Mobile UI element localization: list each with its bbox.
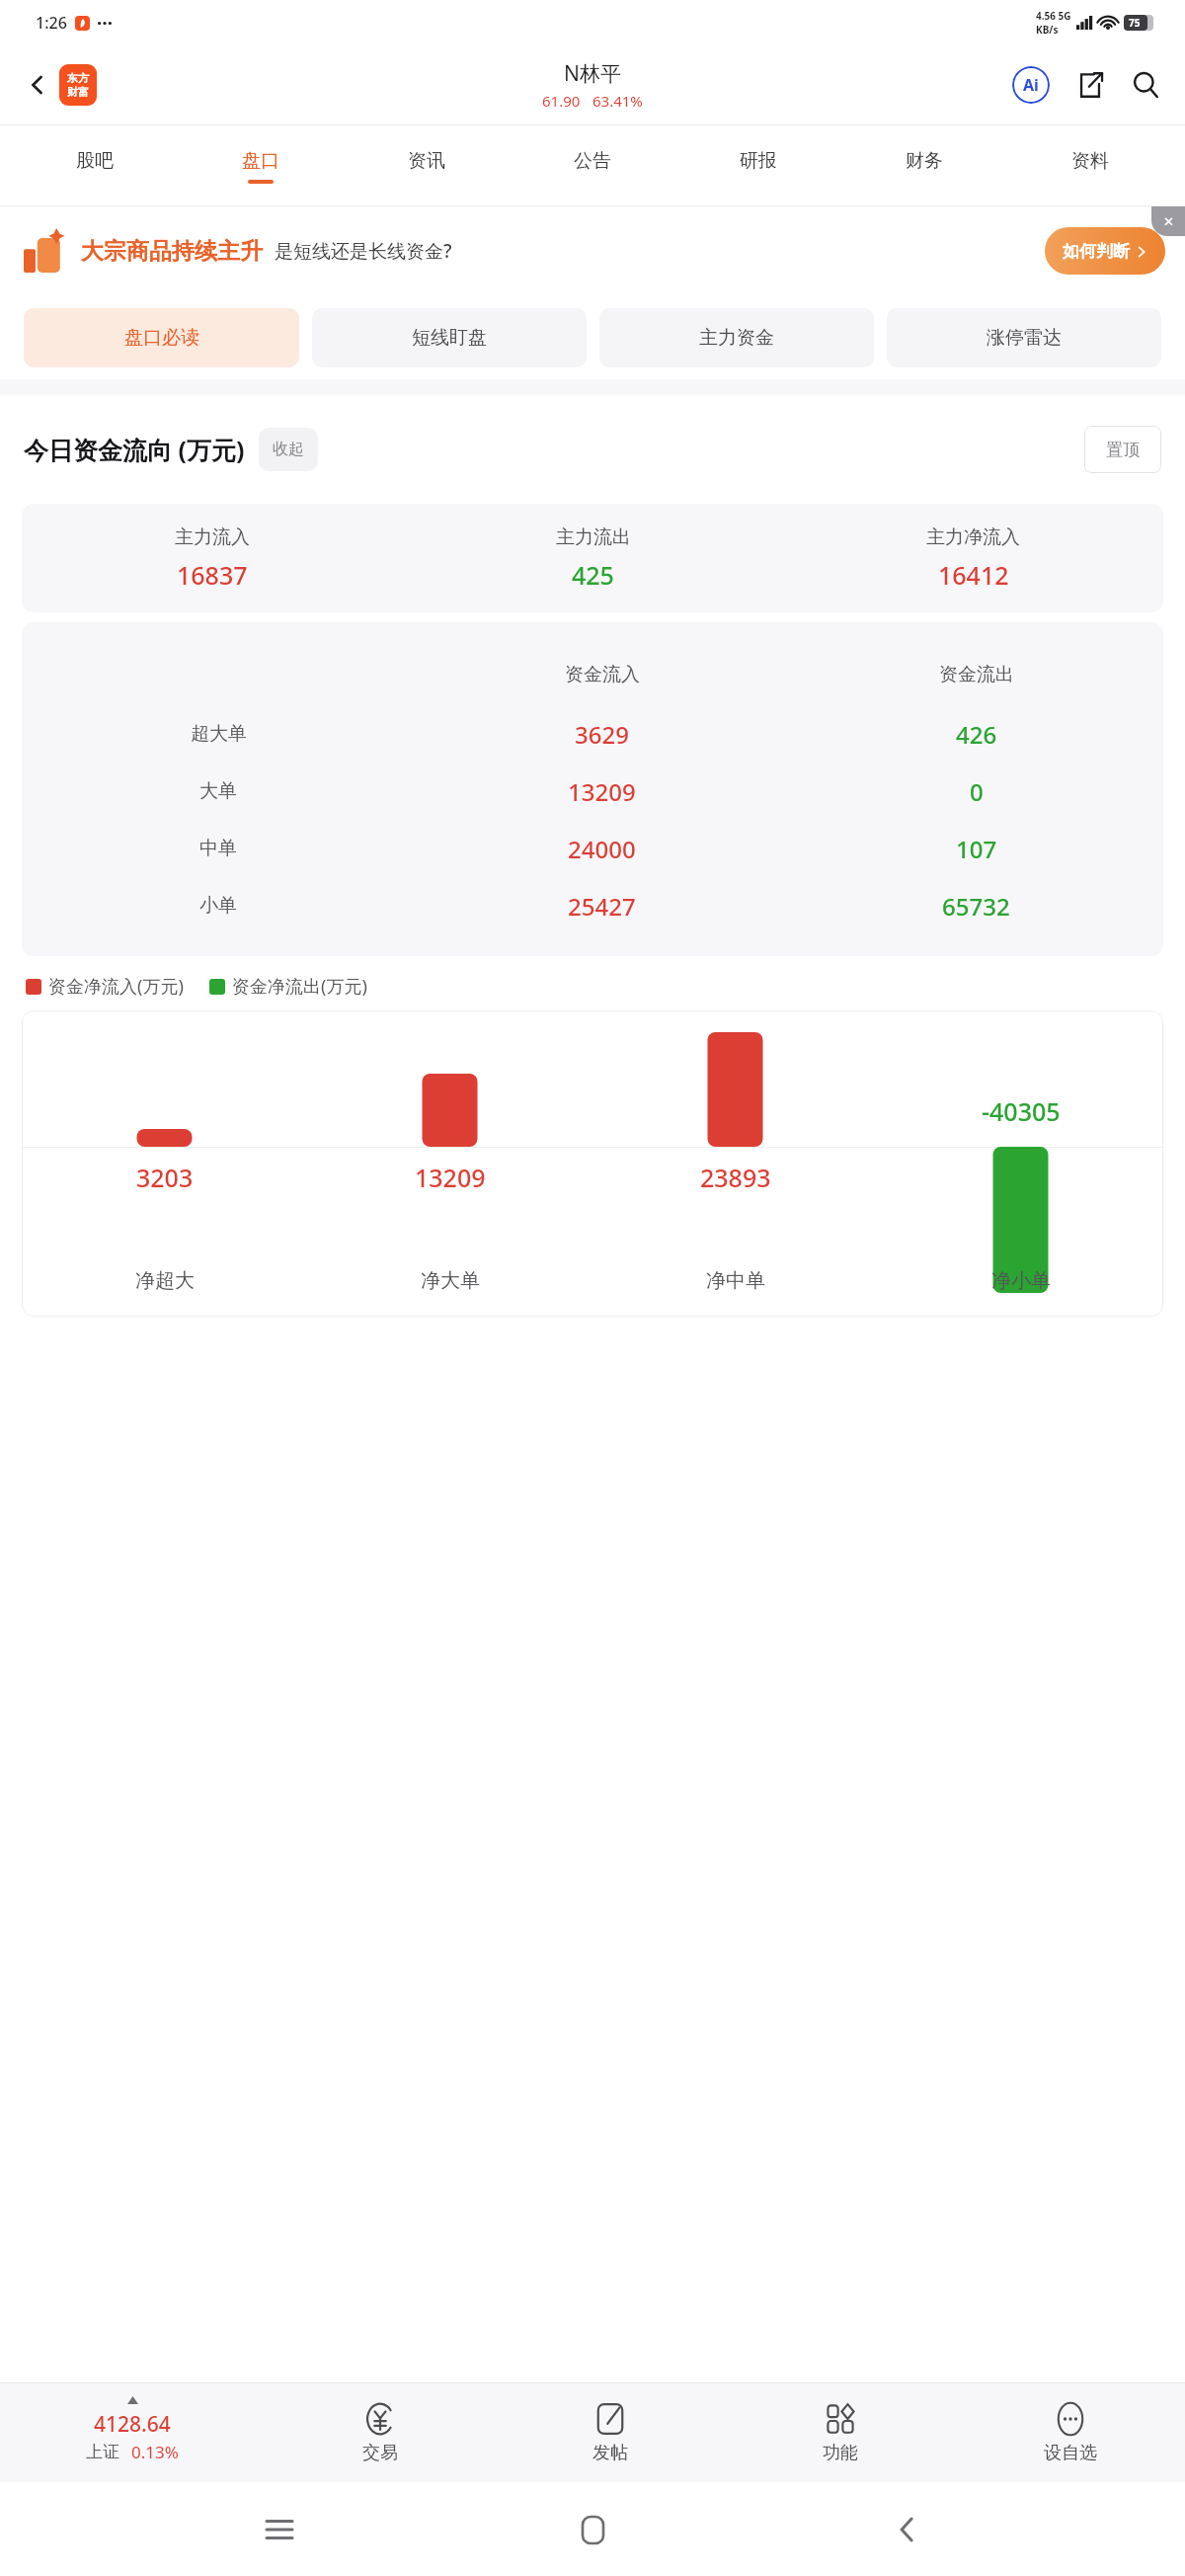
staticText: 中单: [199, 837, 237, 860]
staticText: 25427: [568, 890, 636, 923]
button[interactable]: Search: [1124, 63, 1167, 107]
staticText: 涨停雷达: [987, 326, 1062, 350]
button[interactable]: 交易: [265, 2383, 495, 2482]
staticText: 3629: [575, 718, 629, 751]
staticText: 426: [956, 718, 997, 751]
staticText: 上证: [86, 2442, 119, 2462]
staticText: 净小单: [991, 1268, 1051, 1293]
staticText: 主力资金: [699, 326, 774, 350]
staticText: 1:26: [36, 12, 67, 34]
button[interactable]: 资讯: [344, 125, 510, 206]
button[interactable]: 盘口必读: [24, 308, 299, 367]
staticText: Ai: [1023, 74, 1039, 96]
staticText: 超大单: [191, 722, 247, 746]
button[interactable]: 主力资金: [599, 308, 874, 367]
staticText: 净中单: [706, 1268, 765, 1293]
staticText: 发帖: [592, 2442, 628, 2464]
button[interactable]: 功能: [725, 2383, 955, 2482]
button[interactable]: 4128.64: [0, 2383, 265, 2482]
staticText: 公告: [574, 149, 611, 173]
staticText: 资金净流入(万元): [48, 974, 184, 999]
button[interactable]: 主力流入: [22, 504, 1163, 612]
staticText: 东方: [67, 71, 89, 85]
staticText: 23893: [700, 1161, 771, 1194]
button[interactable]: 设自选: [955, 2383, 1185, 2482]
staticText: 资金流入: [565, 663, 640, 686]
staticText: 财富: [67, 85, 89, 99]
staticText: 小单: [199, 894, 237, 918]
staticText: 研报: [740, 149, 777, 173]
button[interactable]: AI assistant: [1009, 63, 1053, 107]
button[interactable]: 收起: [273, 428, 304, 471]
staticText: 财务: [906, 149, 943, 173]
staticText: 0.13%: [131, 2441, 179, 2463]
button[interactable]: 盘口: [178, 125, 344, 206]
staticText: 净超大: [135, 1268, 195, 1293]
button[interactable]: Back: [16, 63, 59, 107]
staticText: 交易: [362, 2442, 398, 2464]
staticText: KB/s: [1036, 23, 1059, 37]
button[interactable]: 3203: [22, 1010, 1163, 1317]
button[interactable]: Back: [872, 2495, 941, 2564]
staticText: 如何判断: [1063, 241, 1130, 262]
button[interactable]: 如何判断: [1063, 227, 1147, 275]
staticText: 4.56 5G: [1036, 9, 1071, 23]
staticText: 资金净流出(万元): [232, 974, 367, 999]
button[interactable]: Close ad: [1151, 206, 1185, 236]
button[interactable]: 短线盯盘: [312, 308, 587, 367]
staticText: 今日资金流向 (万元): [24, 433, 245, 466]
staticText: N林平: [564, 59, 621, 88]
staticText: 收起: [273, 440, 304, 459]
staticText: 425: [572, 558, 614, 592]
staticText: 净大单: [421, 1268, 480, 1293]
staticText: 3203: [136, 1161, 194, 1194]
staticText: 107: [956, 833, 997, 865]
staticText: 盘口: [242, 149, 279, 173]
staticText: 63.41%: [592, 91, 643, 111]
staticText: 24000: [568, 833, 636, 865]
button[interactable]: 置顶: [1084, 426, 1161, 473]
staticText: 主力净流入: [926, 525, 1020, 549]
staticText: 16412: [938, 558, 1009, 592]
staticText: 是短线还是长线资金?: [275, 238, 452, 264]
staticText: 61.90: [542, 91, 581, 111]
button[interactable]: 资料: [1007, 125, 1173, 206]
staticText: 0: [970, 775, 984, 808]
staticText: 4128.64: [94, 2410, 171, 2439]
button[interactable]: Home: [558, 2495, 627, 2564]
staticText: 资讯: [408, 149, 445, 173]
staticText: 盘口必读: [124, 326, 199, 350]
button[interactable]: 公告: [510, 125, 675, 206]
staticText: 短线盯盘: [412, 326, 487, 350]
button[interactable]: 大宗商品持续主升: [24, 206, 1165, 295]
button[interactable]: 涨停雷达: [887, 308, 1161, 367]
staticText: 75: [1129, 16, 1141, 30]
button[interactable]: 财务: [841, 125, 1007, 206]
button[interactable]: 发帖: [495, 2383, 725, 2482]
staticText: -40305: [982, 1094, 1061, 1128]
staticText: 资金流出: [939, 663, 1014, 686]
staticText: 股吧: [76, 149, 114, 173]
staticText: ✕: [1163, 214, 1174, 229]
button[interactable]: 研报: [675, 125, 841, 206]
staticText: 16837: [177, 558, 248, 592]
button[interactable]: East Money: [59, 64, 97, 106]
button[interactable]: 股吧: [12, 125, 178, 206]
staticText: 资料: [1071, 149, 1109, 173]
staticText: 置顶: [1106, 440, 1140, 460]
staticText: 主力流出: [556, 525, 631, 549]
staticText: 功能: [823, 2442, 858, 2464]
staticText: 13209: [415, 1161, 486, 1194]
staticText: 13209: [568, 775, 636, 808]
staticText: 设自选: [1044, 2442, 1097, 2464]
button[interactable]: Recents: [245, 2495, 314, 2564]
staticText: 65732: [942, 890, 1010, 923]
staticText: 主力流入: [175, 525, 250, 549]
button[interactable]: 资金流入: [22, 622, 1163, 956]
button[interactable]: Share: [1068, 63, 1112, 107]
staticText: 大宗商品持续主升: [81, 237, 263, 266]
staticText: 大单: [199, 779, 237, 803]
